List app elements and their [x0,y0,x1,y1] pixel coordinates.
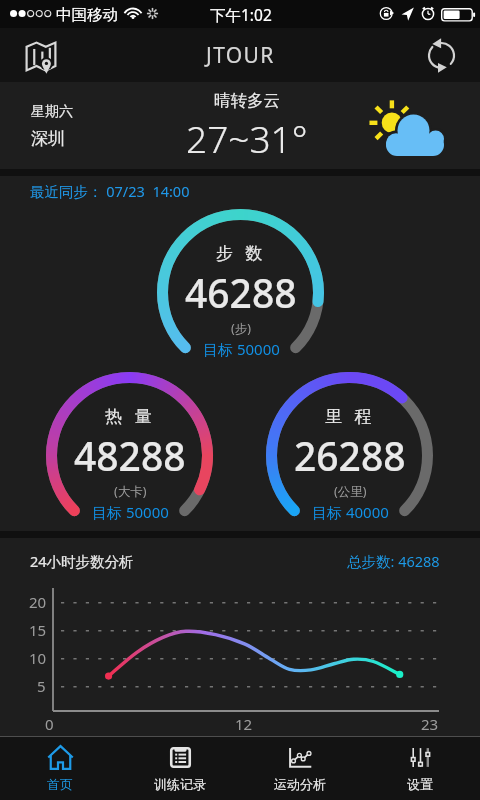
button[interactable]: 运动分析 [240,737,360,800]
staticText: 23 [421,714,439,734]
button[interactable]: 步 数 [157,209,324,376]
staticText: 目标 50000 [203,339,280,359]
staticText: 里 程 [325,404,376,427]
staticText: 24小时步数分析 [30,551,134,571]
staticText: 中国移动 [56,5,118,25]
staticText: 首页 [47,776,73,792]
staticText: 训练记录 [154,776,206,792]
staticText: JTOUR [206,41,275,70]
staticText: 下午1:02 [210,4,272,25]
staticText: 27~31° [186,113,308,163]
staticText: 步 数 [216,241,267,264]
staticText: 星期六 [31,103,73,121]
staticText: 46288 [185,266,297,319]
staticText: 26288 [294,429,406,482]
staticText: 晴转多云 [214,90,280,111]
staticText: 最近同步： 07/23 14:00 [30,181,190,201]
staticText: 运动分析 [274,776,326,792]
button[interactable]: 设置 [360,737,480,800]
button[interactable]: 首页 [0,737,120,800]
button[interactable]: 里 程 [266,372,433,539]
staticText: 0 [45,714,54,734]
staticText: 设置 [407,776,433,792]
staticText: 深圳 [31,128,65,149]
staticText: 10 [29,648,47,668]
staticText: 12 [235,714,253,734]
staticText: (步) [231,320,252,337]
staticText: 目标 40000 [312,502,389,522]
staticText: 总步数: 46288 [347,551,440,571]
staticText: 热 量 [105,404,156,427]
staticText: (大卡) [114,483,147,500]
staticText: 目标 50000 [92,502,169,522]
staticText: (公里) [334,483,367,500]
button[interactable]: 热 量 [46,372,213,539]
staticText: 15 [29,620,47,640]
button[interactable]: Map [26,32,72,78]
staticText: 5 [37,676,46,696]
button[interactable]: Refresh [417,31,465,79]
staticText: 48288 [74,429,186,482]
staticText: 20 [29,592,47,612]
button[interactable]: 训练记录 [120,737,240,800]
